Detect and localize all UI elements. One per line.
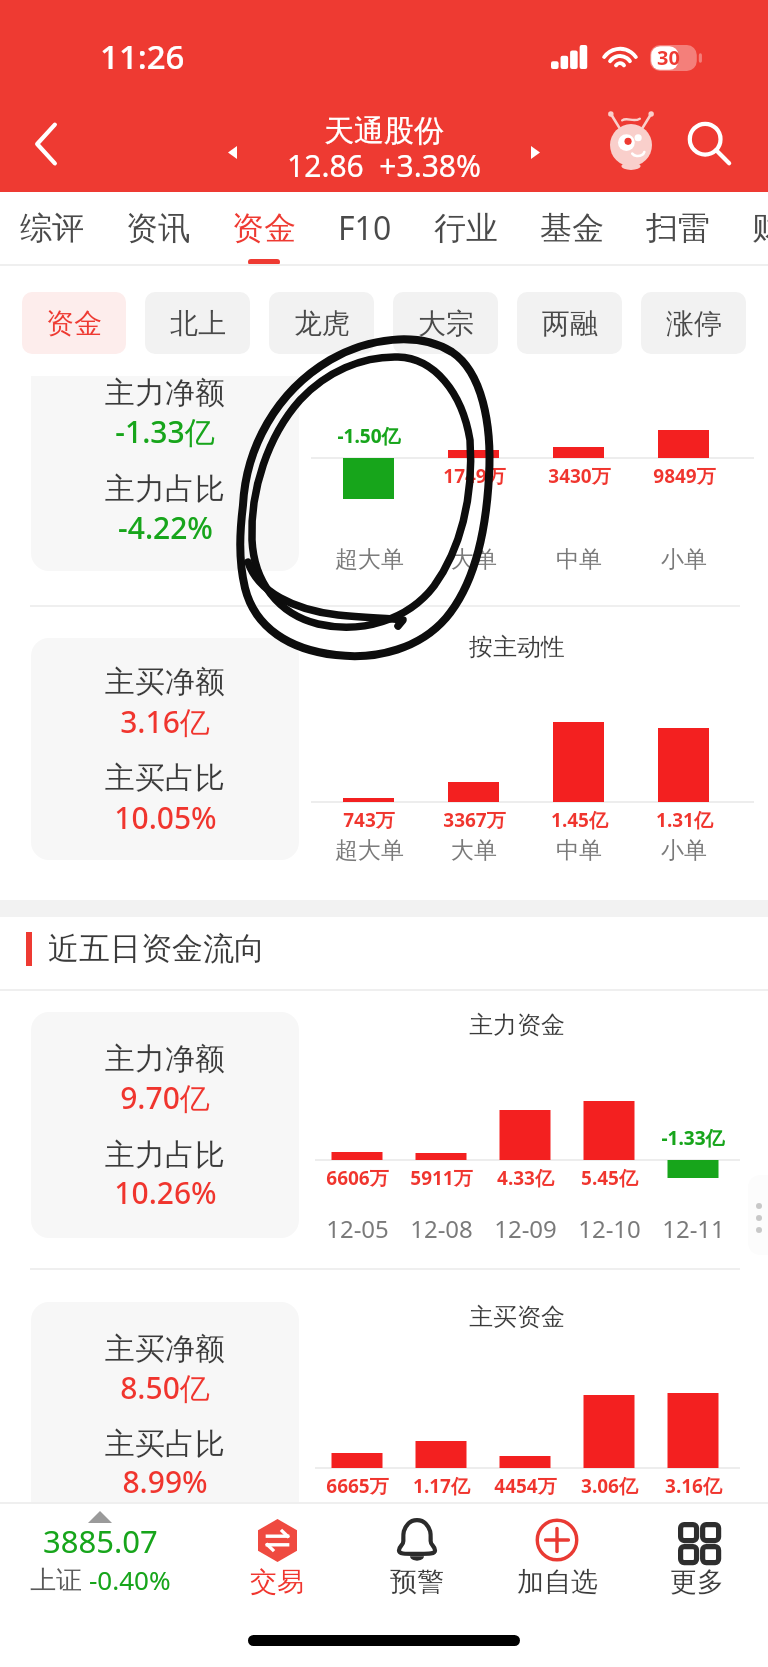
staticText: -4.22% bbox=[118, 507, 213, 548]
button[interactable]: 两融 bbox=[517, 292, 622, 354]
button[interactable]: 交易 bbox=[209, 1502, 345, 1612]
staticText: 两融 bbox=[542, 306, 598, 341]
staticText: 12.86 +3.38% bbox=[287, 145, 481, 186]
staticText: 6606万 bbox=[326, 1165, 389, 1191]
staticText: 3.16亿 bbox=[120, 701, 210, 742]
staticText: 743万 bbox=[343, 807, 395, 833]
staticText: 1.45亿 bbox=[551, 807, 608, 833]
button[interactable]: 加自选 bbox=[489, 1502, 625, 1612]
staticText: 超大单 bbox=[335, 545, 404, 574]
staticText: 行业 bbox=[434, 208, 498, 248]
staticText: 上证 bbox=[30, 1561, 89, 1597]
staticText: 小单 bbox=[661, 545, 707, 574]
staticText: -0.40% bbox=[89, 1562, 171, 1597]
button[interactable]: 更多 bbox=[629, 1502, 765, 1612]
staticText: 主力资金 bbox=[469, 1010, 565, 1040]
button[interactable]: F10 bbox=[338, 192, 392, 266]
staticText: 1.17亿 bbox=[413, 1473, 470, 1499]
staticText: 北上 bbox=[170, 306, 226, 341]
staticText: 扫雷 bbox=[646, 208, 710, 248]
button[interactable] bbox=[31, 376, 299, 571]
staticText: -1.33亿 bbox=[115, 411, 215, 452]
button[interactable]: 资金 bbox=[22, 292, 126, 354]
staticText: 加自选 bbox=[517, 1565, 598, 1599]
staticText: 6665万 bbox=[326, 1473, 389, 1499]
staticText: 3.16亿 bbox=[665, 1473, 722, 1499]
staticText: 中单 bbox=[556, 836, 602, 865]
staticText: 按主动性 bbox=[469, 632, 565, 662]
staticText: F10 bbox=[338, 206, 392, 250]
staticText: 交易 bbox=[250, 1565, 304, 1599]
staticText: 主力净额 bbox=[105, 374, 225, 412]
button[interactable] bbox=[31, 1302, 299, 1524]
button[interactable]: More bbox=[748, 1175, 768, 1255]
button[interactable]: Search bbox=[666, 96, 752, 192]
staticText: 主力占比 bbox=[105, 470, 225, 508]
button[interactable]: 行业 bbox=[434, 192, 498, 266]
staticText: 12-11 bbox=[662, 1212, 725, 1245]
button[interactable]: 资讯 bbox=[126, 192, 190, 266]
staticText: 10.05% bbox=[114, 797, 217, 838]
staticText: 小单 bbox=[661, 836, 707, 865]
staticText: 近五日资金流向 bbox=[48, 929, 265, 968]
button[interactable]: 扫雷 bbox=[646, 192, 710, 266]
staticText: 12-09 bbox=[494, 1212, 557, 1245]
staticText: 主买占比 bbox=[105, 1425, 225, 1463]
staticText: 4454万 bbox=[494, 1473, 557, 1499]
staticText: 3430万 bbox=[548, 463, 611, 489]
staticText: 11:26 bbox=[100, 34, 185, 79]
staticText: -1.50亿 bbox=[337, 423, 401, 449]
staticText: 资金 bbox=[232, 208, 296, 248]
staticText: 更多 bbox=[670, 1565, 724, 1599]
staticText: 3367万 bbox=[443, 807, 506, 833]
staticText: 12-10 bbox=[578, 1212, 641, 1245]
staticText: 主力净额 bbox=[105, 1040, 225, 1078]
staticText: 9.70亿 bbox=[120, 1077, 210, 1118]
staticText: 3.06亿 bbox=[581, 1473, 638, 1499]
staticText: 综评 bbox=[20, 208, 84, 248]
staticText: 主买资金 bbox=[469, 1302, 565, 1332]
staticText: -1.33亿 bbox=[661, 1125, 725, 1151]
button[interactable]: 预警 bbox=[349, 1502, 485, 1612]
staticText: 资金 bbox=[46, 306, 102, 341]
staticText: 4.33亿 bbox=[497, 1165, 554, 1191]
button[interactable]: 财 bbox=[752, 192, 768, 266]
staticText: 5911万 bbox=[410, 1165, 473, 1191]
staticText: 1749万 bbox=[443, 463, 506, 489]
button[interactable]: 涨停 bbox=[641, 292, 746, 354]
staticText: 12-05 bbox=[326, 1212, 389, 1245]
button[interactable]: Assistant bbox=[588, 96, 674, 192]
staticText: 12-08 bbox=[410, 1212, 473, 1245]
staticText: 9849万 bbox=[653, 463, 716, 489]
staticText: 30 bbox=[657, 44, 680, 71]
staticText: 主买占比 bbox=[105, 759, 225, 797]
staticText: 预警 bbox=[390, 1565, 444, 1599]
staticText: 1.31亿 bbox=[656, 807, 713, 833]
staticText: 中单 bbox=[556, 545, 602, 574]
staticText: 涨停 bbox=[666, 306, 722, 341]
staticText: 财 bbox=[752, 208, 768, 248]
button[interactable]: 北上 bbox=[145, 292, 250, 354]
button[interactable]: 综评 bbox=[20, 192, 84, 266]
staticText: 龙虎 bbox=[294, 306, 350, 341]
staticText: 8.50亿 bbox=[120, 1367, 210, 1408]
staticText: 主力占比 bbox=[105, 1136, 225, 1174]
staticText: 10.26% bbox=[114, 1172, 217, 1213]
staticText: 大单 bbox=[451, 545, 497, 574]
staticText: 主买净额 bbox=[105, 663, 225, 701]
button[interactable]: Back bbox=[0, 96, 92, 192]
staticText: 8.99% bbox=[122, 1461, 208, 1502]
button[interactable]: 基金 bbox=[540, 192, 604, 266]
staticText: 5.45亿 bbox=[581, 1165, 638, 1191]
staticText: 天通股份 bbox=[324, 112, 444, 150]
button[interactable] bbox=[31, 1012, 299, 1238]
button[interactable] bbox=[31, 638, 299, 860]
staticText: 大单 bbox=[451, 836, 497, 865]
button[interactable]: 3885.07 bbox=[0, 1502, 200, 1612]
staticText: 3885.07 bbox=[43, 1520, 158, 1562]
button[interactable]: 龙虎 bbox=[269, 292, 374, 354]
staticText: 资讯 bbox=[126, 208, 190, 248]
button[interactable]: 大宗 bbox=[393, 292, 498, 354]
button[interactable]: 资金 bbox=[232, 192, 296, 266]
staticText: 基金 bbox=[540, 208, 604, 248]
